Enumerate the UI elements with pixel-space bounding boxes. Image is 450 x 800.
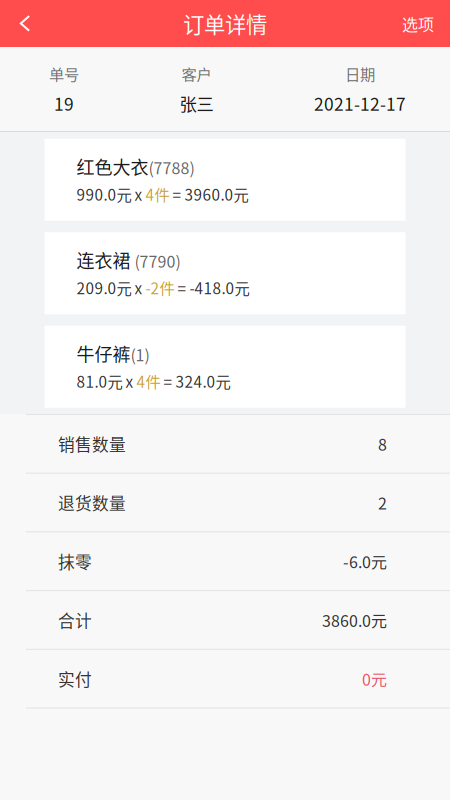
staticText: = -418.0元	[174, 276, 249, 299]
button[interactable]: Back	[0, 0, 50, 47]
staticText: 实付	[58, 667, 92, 691]
staticText: -6.0元	[343, 550, 387, 573]
staticText: 4件	[136, 370, 160, 392]
staticText: 订单详情	[183, 8, 267, 39]
staticText: 209.0元 x	[76, 276, 145, 299]
staticText: 合计	[58, 608, 92, 632]
staticText: 退货数量	[58, 490, 126, 515]
staticText: 连衣裙	[76, 247, 130, 273]
staticText: 4件	[145, 183, 169, 205]
button[interactable]: 销售数量	[0, 415, 450, 474]
button[interactable]: 抹零	[0, 532, 450, 591]
staticText: 2021-12-17	[314, 91, 406, 116]
staticText: (7790)	[130, 249, 180, 272]
staticText: (7788)	[148, 156, 194, 179]
staticText: 销售数量	[58, 432, 126, 456]
staticText: 19	[54, 91, 74, 116]
button[interactable]: 合计	[0, 591, 450, 650]
staticText: 8	[378, 432, 387, 455]
staticText: (1)	[130, 343, 149, 366]
staticText: 0元	[362, 667, 387, 690]
staticText: 红色大衣	[76, 153, 148, 179]
staticText: 张三	[179, 91, 213, 116]
button[interactable]: 实付	[0, 650, 450, 708]
staticText: 牛仔裤	[76, 340, 130, 366]
staticText: 抹零	[58, 549, 92, 573]
staticText: 选项	[402, 12, 434, 35]
button[interactable]: 退货数量	[0, 474, 450, 532]
staticText: 单号	[49, 62, 79, 84]
staticText: 客户	[181, 62, 211, 84]
staticText: 990.0元 x	[76, 183, 145, 205]
staticText: 81.0元 x	[76, 370, 136, 392]
staticText: -2件	[145, 276, 174, 299]
staticText: 3860.0元	[322, 608, 387, 632]
staticText: = 3960.0元	[169, 183, 248, 205]
staticText: = 324.0元	[160, 370, 230, 392]
staticText: 日期	[345, 62, 375, 84]
button[interactable]: 选项	[386, 0, 450, 47]
staticText: 2	[378, 491, 387, 514]
